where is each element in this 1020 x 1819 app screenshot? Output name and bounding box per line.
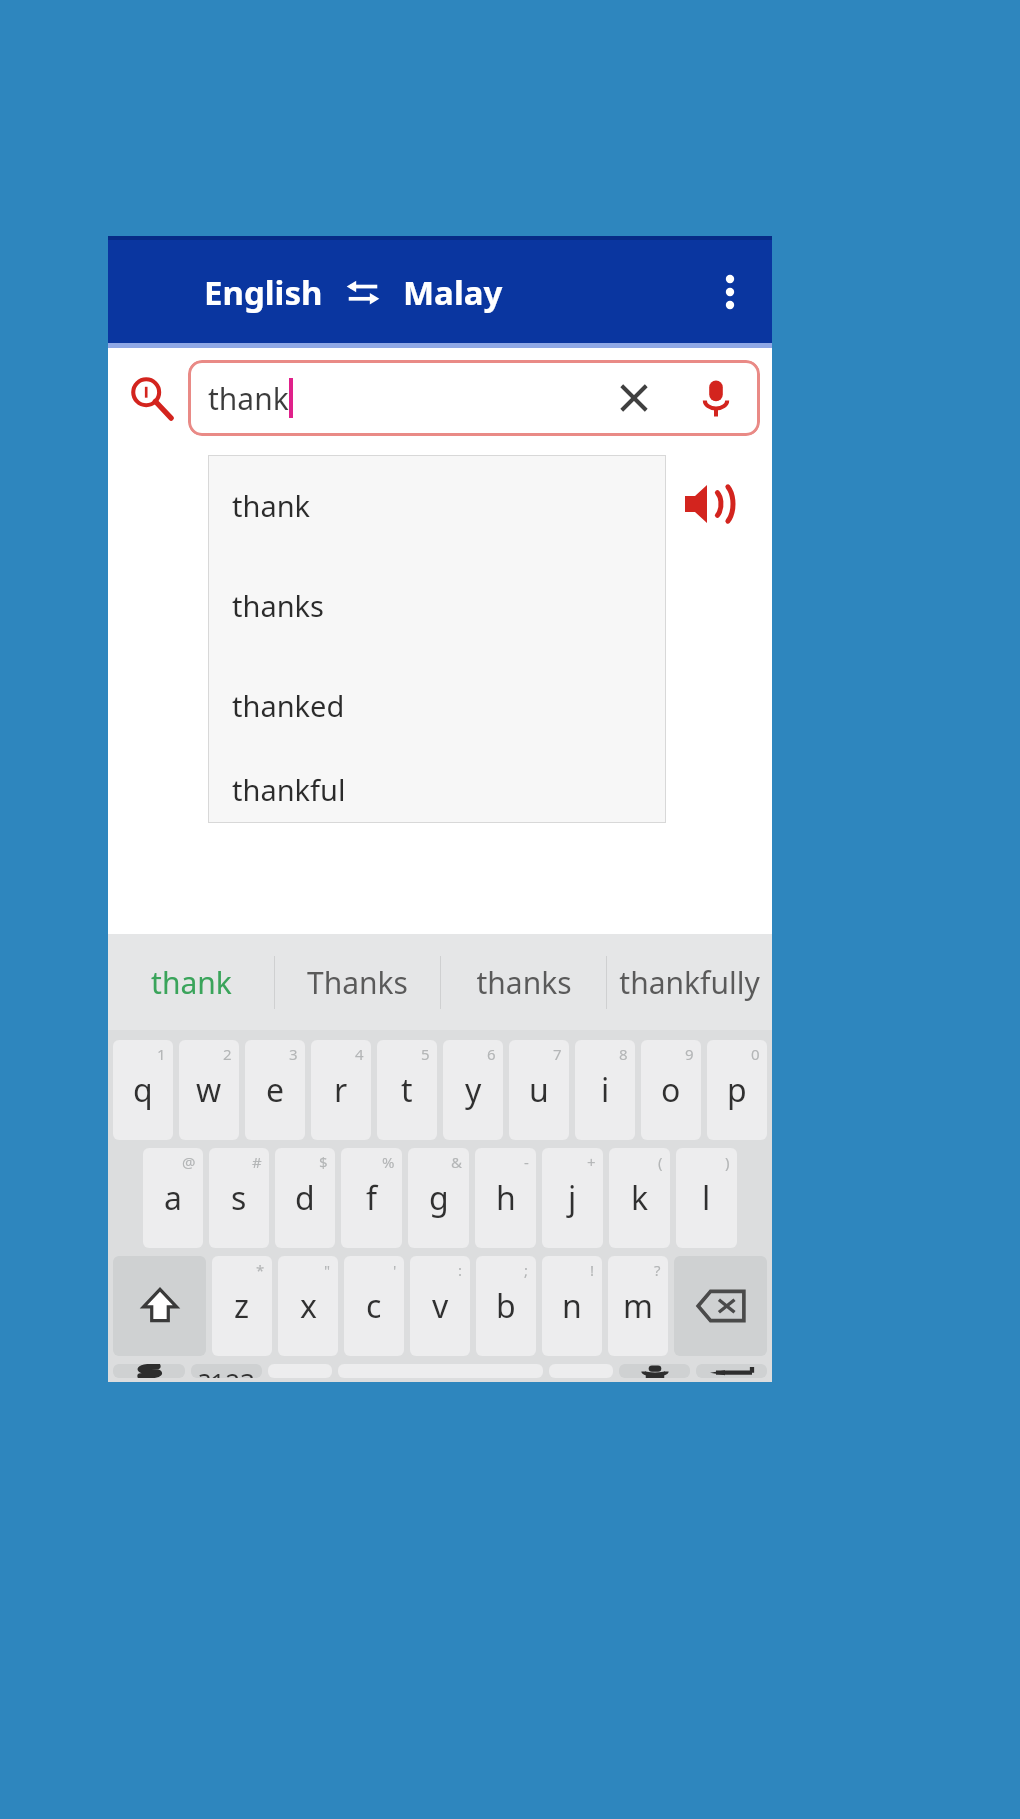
button[interactable]: thank [188,360,760,436]
button[interactable]: + [542,1148,603,1248]
button[interactable]: ? [608,1256,668,1356]
staticText: $ [319,1152,328,1172]
button[interactable]: Swap languages [343,272,383,312]
staticText: z [234,1284,250,1328]
button[interactable]: More options [698,260,762,324]
staticText: & [451,1152,462,1172]
staticText: * [256,1260,265,1280]
staticText: - [524,1152,529,1172]
button[interactable]: thankfully [607,934,772,1030]
staticText: b [496,1284,516,1328]
button[interactable]: ' [344,1256,404,1356]
staticText: thank [232,486,311,525]
staticText: ! [590,1260,595,1280]
button[interactable]: Shift [113,1256,206,1356]
button[interactable]: Voice typing [619,1364,690,1378]
staticText: ' [393,1260,397,1280]
staticText: n [562,1284,582,1328]
button[interactable]: 6 [443,1040,503,1140]
staticText: f [366,1176,378,1220]
button[interactable]: : [410,1256,470,1356]
button[interactable]: 4 [311,1040,371,1140]
button[interactable]: Malay [403,270,503,315]
button[interactable]: * [212,1256,272,1356]
staticText: thankful [232,770,346,809]
staticText: thankfully [619,962,760,1003]
button[interactable]: thankful [208,755,666,823]
staticText: s [231,1176,247,1220]
button[interactable]: @ [143,1148,203,1248]
button[interactable]: ( [609,1148,670,1248]
button[interactable]: 1 [113,1040,173,1140]
button[interactable]: thank [208,455,666,555]
staticText: c [366,1284,382,1328]
staticText: q [133,1068,153,1112]
button[interactable]: ! [542,1256,602,1356]
staticText: 0 [751,1044,760,1064]
button[interactable]: thank [108,934,274,1030]
button[interactable]: Thanks [275,934,440,1030]
button[interactable]: Enter [696,1364,767,1378]
staticText: j [568,1176,577,1220]
button[interactable]: ; [476,1256,536,1356]
button[interactable]: Emoji [113,1364,185,1378]
button[interactable]: Search [122,369,180,427]
button[interactable]: Backspace [674,1256,767,1356]
button[interactable]: 8 [575,1040,635,1140]
staticText: e [266,1068,285,1112]
button[interactable]: thanks [208,555,666,655]
staticText: ? [654,1260,661,1280]
staticText: d [295,1176,315,1220]
staticText: v [432,1284,449,1328]
staticText: u [529,1068,549,1112]
button[interactable]: 3 [245,1040,305,1140]
button[interactable]: & [408,1148,469,1248]
button[interactable]: Symbols [191,1364,262,1378]
staticText: thanked [232,686,345,725]
button[interactable]: % [341,1148,402,1248]
button[interactable]: $ [275,1148,335,1248]
staticText: t [401,1068,413,1112]
button[interactable]: 9 [641,1040,701,1140]
staticText: g [429,1176,449,1220]
button[interactable]: English [204,270,323,315]
button[interactable]: 7 [509,1040,569,1140]
button[interactable]: Voice input [688,370,744,426]
staticText: i [601,1068,610,1112]
staticText: ?123 [199,1364,255,1378]
staticText: o [661,1068,681,1112]
staticText: 6 [487,1044,496,1064]
button[interactable]: 0 [707,1040,767,1140]
staticText: l [702,1176,711,1220]
staticText: + [587,1152,596,1172]
button[interactable]: Play pronunciation [676,472,740,536]
staticText: 5 [421,1044,430,1064]
button[interactable]: - [475,1148,536,1248]
staticText: 7 [553,1044,562,1064]
staticText: thanks [476,962,572,1003]
staticText: h [496,1176,516,1220]
staticText: Thanks [307,962,408,1003]
staticText: ; [524,1260,529,1280]
staticText: ) [725,1152,730,1172]
button[interactable]: thanks [441,934,606,1030]
staticText: 4 [355,1044,364,1064]
staticText: thanks [232,586,324,625]
button[interactable]: thanked [208,655,666,755]
button[interactable]: ) [676,1148,737,1248]
staticText: 9 [685,1044,694,1064]
button[interactable]: # [209,1148,269,1248]
staticText: m [623,1284,653,1328]
staticText: % [382,1152,395,1172]
staticText: 8 [619,1044,628,1064]
staticText: 2 [223,1044,232,1064]
button[interactable]: " [278,1256,338,1356]
button[interactable]: 2 [179,1040,239,1140]
button[interactable]: Clear text [604,368,664,428]
button[interactable]: 5 [377,1040,437,1140]
staticText: thank [151,962,232,1003]
staticText: r [334,1068,348,1112]
